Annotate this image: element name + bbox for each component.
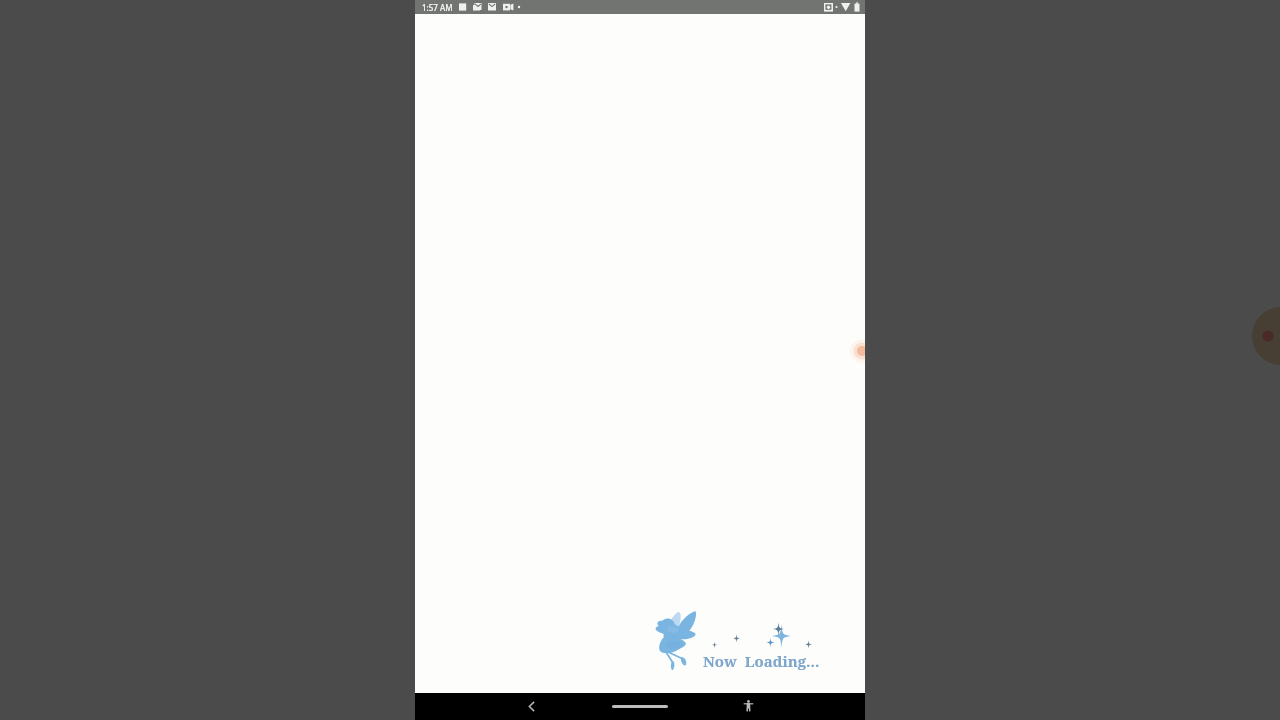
button[interactable]: Home [600,693,680,720]
button[interactable]: Back [515,693,555,720]
other: Loading fairy animation [415,14,865,693]
button[interactable]: Accessibility [725,693,765,720]
staticText: Now Loading... [703,651,820,671]
staticText: 1:57 AM [422,2,453,13]
